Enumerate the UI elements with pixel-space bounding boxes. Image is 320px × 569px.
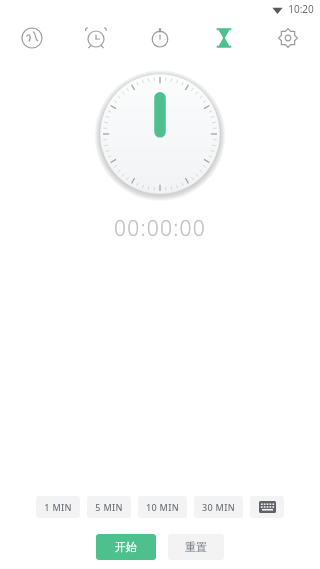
staticText: 1 MIN	[44, 501, 72, 513]
button[interactable]: 1 MIN	[36, 496, 80, 518]
button[interactable]: 重置	[168, 534, 224, 560]
button[interactable]: Alarm	[64, 18, 128, 58]
staticText: 10 MIN	[146, 501, 179, 513]
staticText: 10:20	[288, 2, 314, 16]
staticText: 重置	[185, 540, 207, 554]
button[interactable]: Keyboard input	[250, 496, 284, 518]
button[interactable]: 5 MIN	[87, 496, 131, 518]
button[interactable]: Settings	[256, 18, 320, 58]
button[interactable]: 10 MIN	[138, 496, 187, 518]
button[interactable]: World clock	[0, 18, 64, 58]
staticText: 30 MIN	[202, 501, 235, 513]
button[interactable]: 开始	[96, 534, 156, 560]
button[interactable]: Timer	[192, 18, 256, 58]
button[interactable]: 30 MIN	[194, 496, 243, 518]
staticText: 00:00:00	[114, 214, 206, 243]
staticText: 开始	[115, 540, 137, 554]
staticText: 5 MIN	[95, 501, 123, 513]
button[interactable]: Stopwatch	[128, 18, 192, 58]
